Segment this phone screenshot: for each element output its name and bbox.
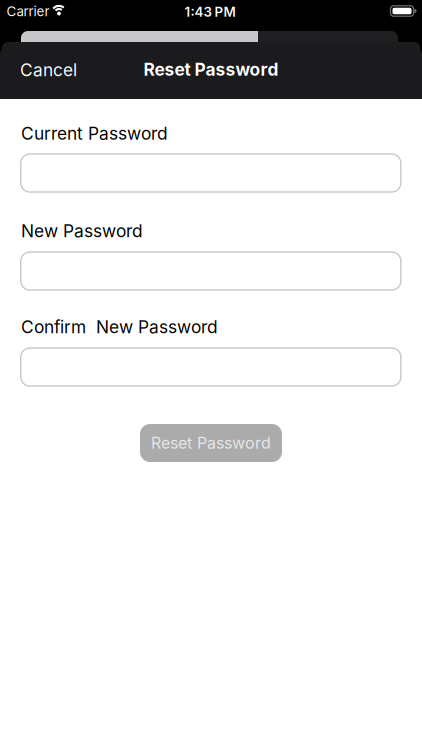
staticText: Reset Password [151,434,271,452]
button[interactable] [21,348,401,386]
button[interactable]: Reset Password [140,424,282,462]
staticText: Cancel [20,60,77,80]
staticText: 1:43 PM [184,4,235,20]
staticText: Reset Password [143,59,278,80]
button[interactable]: Cancel [20,60,77,80]
staticText: New Password [21,221,143,241]
staticText: Current Password [21,123,168,144]
staticText: Confirm New Password [21,317,218,337]
button[interactable] [21,154,401,192]
staticText: Carrier [6,4,49,19]
button[interactable] [21,252,401,290]
